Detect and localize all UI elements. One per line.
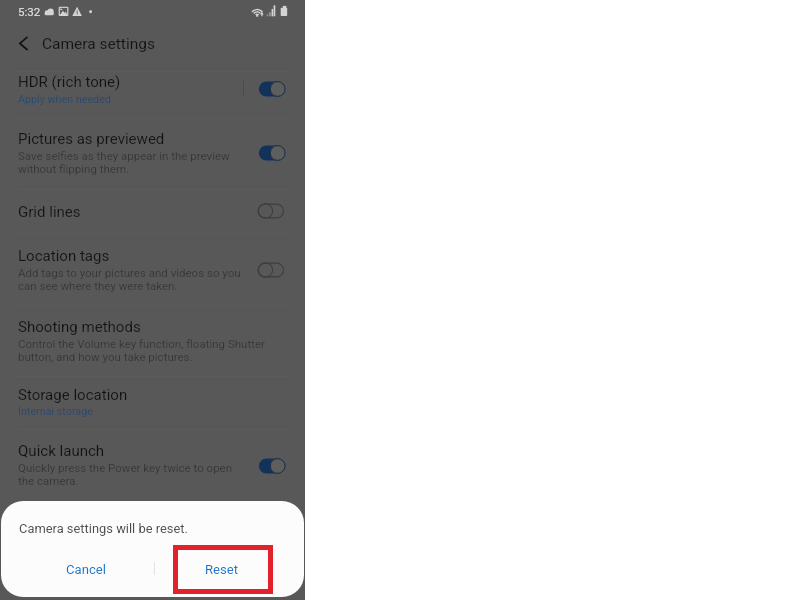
staticText: Quick launch bbox=[18, 442, 105, 460]
staticText: Control the Volume key function, floatin… bbox=[18, 337, 265, 350]
staticText: Internal storage bbox=[18, 405, 93, 418]
button[interactable]: Switch on bbox=[257, 78, 287, 100]
button[interactable]: Back bbox=[6, 26, 40, 60]
staticText: Camera settings bbox=[42, 35, 155, 53]
button[interactable]: Switch on bbox=[257, 142, 287, 164]
staticText: button, and how you take pictures. bbox=[18, 350, 193, 363]
button[interactable] bbox=[0, 190, 305, 233]
staticText: without flipping them. bbox=[18, 162, 130, 175]
button[interactable] bbox=[0, 119, 305, 189]
staticText: Add tags to your pictures and videos so … bbox=[18, 266, 241, 279]
staticText: Quickly press the Power key twice to ope… bbox=[18, 461, 233, 474]
button[interactable] bbox=[0, 72, 305, 118]
staticText: Location tags bbox=[18, 247, 110, 265]
button[interactable] bbox=[0, 377, 305, 429]
button[interactable] bbox=[0, 430, 305, 500]
button[interactable]: Switch on bbox=[257, 455, 287, 477]
staticText: Shooting methods bbox=[18, 318, 141, 336]
staticText: can see where they were taken. bbox=[18, 279, 178, 292]
staticText: Pictures as previewed bbox=[18, 130, 165, 148]
button[interactable]: Switch off bbox=[256, 259, 286, 281]
button[interactable]: Reset bbox=[155, 550, 287, 595]
staticText: Grid lines bbox=[18, 203, 81, 221]
staticText: Reset bbox=[205, 562, 238, 577]
staticText: 5:32 bbox=[18, 5, 41, 19]
button[interactable]: Cancel bbox=[17, 550, 154, 595]
staticText: HDR (rich tone) bbox=[18, 73, 121, 91]
button[interactable] bbox=[0, 306, 305, 376]
button[interactable]: Camera settings bbox=[41, 28, 221, 58]
staticText: Storage location bbox=[18, 386, 128, 404]
button[interactable]: Switch off bbox=[256, 200, 286, 222]
staticText: Cancel bbox=[66, 562, 106, 577]
button[interactable] bbox=[0, 234, 305, 304]
staticText: Save selfies as they appear in the previ… bbox=[18, 149, 230, 162]
staticText: the camera. bbox=[18, 474, 79, 487]
staticText: Camera settings will be reset. bbox=[19, 521, 188, 536]
staticText: Apply when needed bbox=[18, 93, 111, 106]
